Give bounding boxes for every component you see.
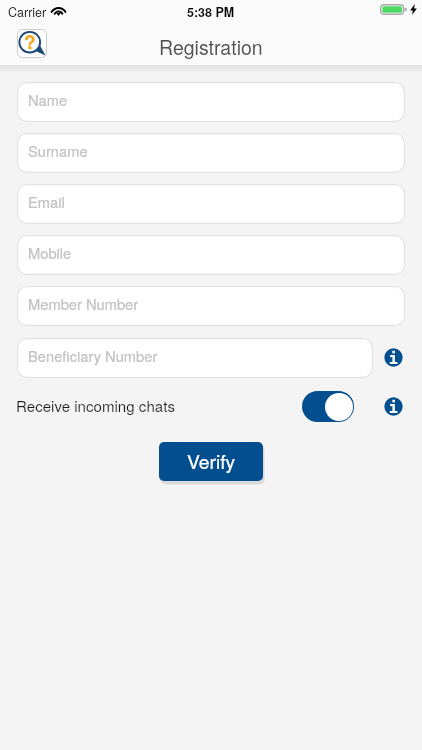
button[interactable]: Member Number [17,286,405,326]
button[interactable]: Surname [17,133,405,173]
staticText: Mobile [28,242,72,263]
staticText: Beneficiary Number [28,345,158,366]
staticText: Surname [28,140,88,161]
staticText: ? [24,29,36,55]
button[interactable]: Info [383,347,404,368]
button[interactable]: Beneficiary Number [17,338,373,378]
staticText: Email [28,191,65,212]
button[interactable]: Verify [159,442,263,481]
staticText: Member Number [28,293,139,314]
button[interactable]: Email [17,184,405,224]
staticText: Carrier [8,3,47,21]
staticText: 5:38 PM [187,3,235,21]
staticText: Receive incoming chats [16,395,175,417]
button[interactable]: Receive incoming chats toggle [302,391,354,422]
staticText: Name [28,89,68,110]
button[interactable]: Help [17,29,47,58]
button[interactable]: Mobile [17,235,405,275]
button[interactable]: Name [17,82,405,122]
staticText: Verify [187,447,236,475]
button[interactable]: Info [383,396,404,417]
staticText: Registration [159,33,263,61]
